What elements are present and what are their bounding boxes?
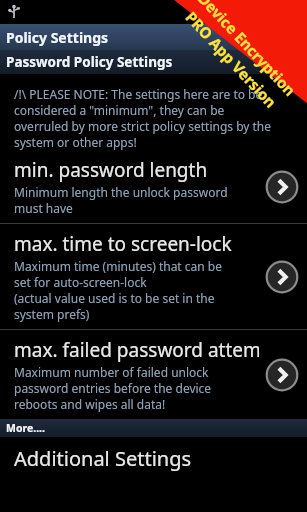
staticText: /!\ PLEASE NOTE: The settings here are t… [14,86,263,102]
button[interactable]: Open min. password length [265,170,299,204]
staticText: Maximum number of failed unlock [14,364,209,380]
staticText: system or other apps! [14,134,137,150]
button[interactable]: max. failed password attempts [0,330,307,419]
staticText: Password Policy Settings [6,53,173,71]
staticText: min. password length [14,157,208,183]
button[interactable]: min. password length [0,150,307,223]
staticText: must have [14,200,73,216]
staticText: max. time to screen-lock [14,231,232,257]
button[interactable]: Policy Settings [0,24,307,50]
staticText: overruled by more strict policy settings… [14,118,272,134]
staticText: considered a "minimum", they can be [14,102,225,118]
staticText: set for auto-screen-lock [14,274,147,290]
button[interactable]: Open max. failed password attempts [265,358,299,392]
staticText: Maximum time (minutes) that can be [14,258,222,274]
staticText: system prefs) [14,306,90,322]
button[interactable]: Open max. time to screen-lock [265,260,299,294]
staticText: password entries before the device [14,380,212,396]
staticText: Minimum length the unlock password [14,184,228,200]
staticText: More.... [6,421,46,435]
staticText: Additional Settings [14,445,192,472]
staticText: (actual value used is to be set in the [14,290,215,306]
staticText: max. failed password attempts [14,337,259,363]
staticText: Policy Settings [6,28,109,47]
button[interactable]: max. time to screen-lock [0,224,307,329]
staticText: reboots and wipes all data! [14,396,166,412]
